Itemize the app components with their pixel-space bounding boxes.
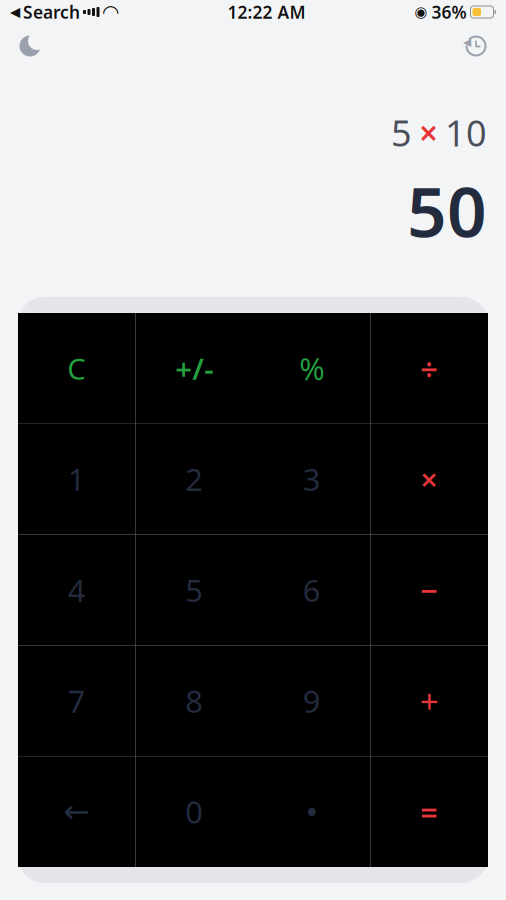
staticText: +	[420, 679, 439, 723]
staticText: 0	[185, 791, 203, 832]
button[interactable]: 8	[135, 645, 253, 756]
button[interactable]: 7	[18, 645, 135, 756]
staticText: %	[299, 348, 324, 389]
staticText: 7	[68, 680, 86, 721]
button[interactable]: 4	[18, 535, 135, 645]
staticText: ◀	[10, 4, 20, 19]
staticText: 3	[303, 459, 321, 499]
staticText: 4	[68, 570, 86, 610]
staticText: ◠	[103, 1, 118, 23]
staticText: 5	[391, 109, 412, 156]
staticText: =	[420, 791, 438, 832]
staticText: ×	[420, 459, 438, 499]
button[interactable]: Divide	[370, 313, 488, 424]
staticText: 50	[407, 164, 487, 256]
staticText: ◀	[463, 36, 471, 48]
staticText: 9	[303, 680, 321, 721]
button[interactable]: 0	[135, 756, 253, 867]
button[interactable]: Plus	[370, 645, 488, 756]
staticText: ◉	[414, 4, 427, 20]
staticText: ÷	[420, 348, 438, 389]
staticText: 10	[445, 109, 487, 156]
staticText: Search	[23, 0, 80, 23]
button[interactable]: 3	[253, 424, 370, 535]
staticText: 36%	[431, 0, 466, 23]
button[interactable]: Multiply	[370, 424, 488, 535]
staticText: 1	[68, 459, 86, 499]
button[interactable]: Equals	[370, 756, 488, 867]
button[interactable]: 9	[253, 645, 370, 756]
staticText: 12:22 AM	[227, 0, 305, 23]
staticText: 8	[185, 680, 203, 721]
button[interactable]: 2	[135, 424, 253, 535]
button[interactable]: Dark mode	[9, 26, 51, 66]
button[interactable]: Decimal point	[253, 756, 370, 867]
button[interactable]: Backspace	[18, 756, 135, 867]
button[interactable]: 1	[18, 424, 135, 535]
button[interactable]: Toggle sign	[135, 313, 253, 424]
staticText: 5	[185, 570, 203, 610]
staticText: +/-	[175, 349, 213, 388]
staticText: ←	[63, 793, 90, 830]
staticText: 2	[185, 459, 203, 499]
staticText: C	[67, 349, 86, 388]
staticText: •	[307, 794, 317, 829]
button[interactable]: 6	[253, 535, 370, 645]
button[interactable]: Percent	[253, 313, 370, 424]
staticText: 6	[303, 570, 321, 610]
button[interactable]: 5	[135, 535, 253, 645]
staticText: ×	[419, 110, 438, 155]
button[interactable]: Minus	[370, 535, 488, 645]
button[interactable]: Clear	[18, 313, 135, 424]
button[interactable]: History	[455, 25, 497, 67]
staticText: −	[420, 570, 438, 610]
